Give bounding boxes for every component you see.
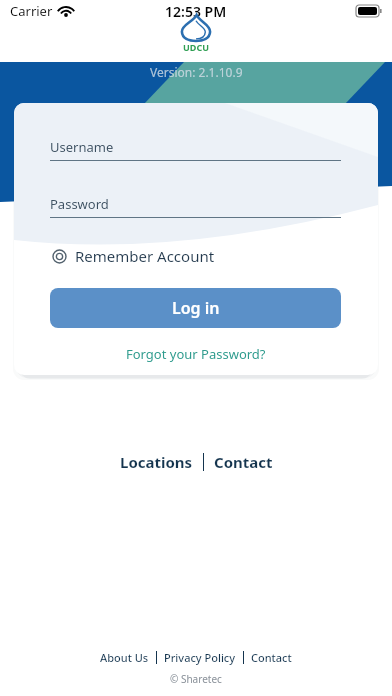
- button[interactable]: Remember Account: [52, 246, 215, 266]
- staticText: Remember Account: [75, 246, 215, 266]
- staticText: Password: [50, 195, 109, 213]
- staticText: Carrier: [10, 2, 53, 20]
- button[interactable]: Contact: [251, 650, 292, 665]
- button[interactable]: Locations: [120, 452, 193, 472]
- button[interactable]: Log in: [50, 288, 341, 328]
- staticText: © Sharetec: [170, 672, 222, 686]
- button[interactable]: About Us: [100, 650, 149, 665]
- button[interactable]: Forgot your Password?: [126, 345, 266, 363]
- button[interactable]: Contact: [214, 452, 273, 472]
- staticText: Log in: [172, 297, 220, 319]
- staticText: UDCU: [183, 41, 209, 53]
- staticText: Version: 2.1.10.9: [150, 64, 243, 80]
- button[interactable]: Privacy Policy: [164, 650, 236, 665]
- staticText: Username: [50, 138, 114, 156]
- staticText: 12:53 PM: [165, 2, 227, 21]
